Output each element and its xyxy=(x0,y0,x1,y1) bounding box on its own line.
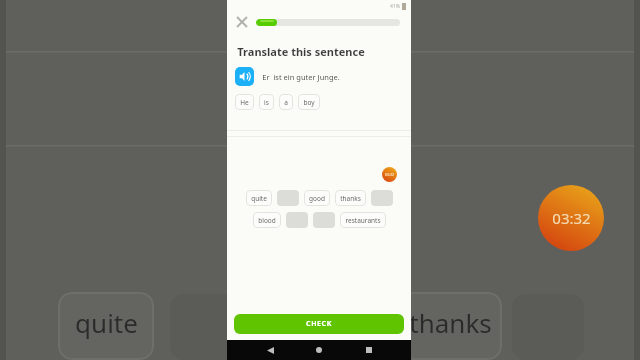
button[interactable]: CHECK xyxy=(234,314,404,334)
button[interactable]: quite xyxy=(246,190,272,206)
button[interactable]: thanks xyxy=(335,190,366,206)
button[interactable]: restaurants xyxy=(340,212,386,228)
staticText: 03:32 xyxy=(385,172,394,177)
staticText: thanks xyxy=(409,305,492,340)
staticText: restaurants xyxy=(345,216,381,225)
staticText: quite xyxy=(251,194,267,203)
staticText: Er ist ein guter Junge. xyxy=(262,72,340,82)
staticText: 03:32 xyxy=(552,208,591,228)
button[interactable]: a xyxy=(279,94,293,110)
button[interactable]: Back xyxy=(263,343,277,357)
button[interactable]: Close xyxy=(234,14,250,30)
button[interactable]: boy xyxy=(298,94,320,110)
staticText: CHECK xyxy=(306,319,332,329)
staticText: good xyxy=(309,194,325,203)
staticText: blood xyxy=(258,216,276,225)
button[interactable]: Play audio xyxy=(235,67,254,86)
button[interactable]: Recent apps xyxy=(362,343,376,357)
staticText: boy xyxy=(303,98,315,107)
staticText: Translate this sentence xyxy=(237,44,365,59)
button[interactable]: Timer 03:32 xyxy=(382,167,397,182)
button[interactable]: Home xyxy=(312,343,326,357)
staticText: is xyxy=(264,98,269,107)
staticText: a xyxy=(284,98,288,107)
button[interactable]: He xyxy=(235,94,254,110)
staticText: quite xyxy=(75,305,138,340)
button[interactable]: good xyxy=(304,190,330,206)
button[interactable]: blood xyxy=(253,212,281,228)
staticText: 41% xyxy=(390,3,400,10)
button[interactable]: is xyxy=(259,94,274,110)
staticText: He xyxy=(240,98,249,107)
staticText: thanks xyxy=(340,194,361,203)
